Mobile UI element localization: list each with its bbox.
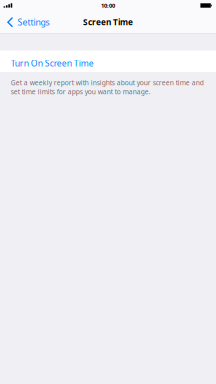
staticText: Settings [17,16,49,28]
button[interactable]: Turn On Screen Time [0,50,216,72]
staticText: Get a weekly report with insights about … [11,78,204,96]
staticText: Screen Time [83,16,133,28]
button[interactable]: Settings [0,12,55,32]
staticText: Turn On Screen Time [11,57,94,69]
staticText: 10:00 [101,2,115,9]
